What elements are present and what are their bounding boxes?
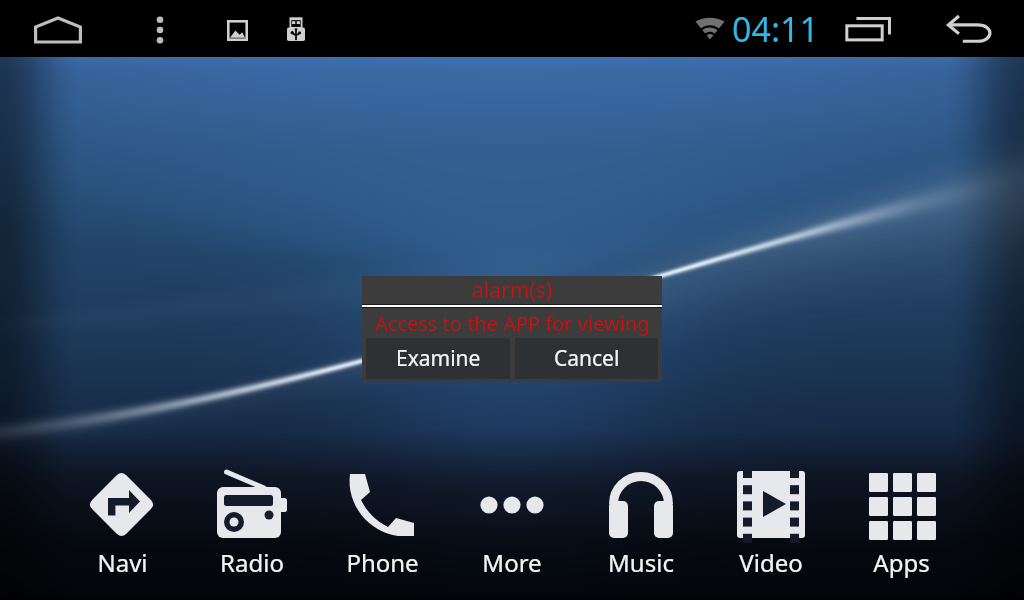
- button[interactable]: Apps: [839, 462, 963, 584]
- button[interactable]: Video: [709, 462, 833, 584]
- button[interactable]: USB connected: [287, 16, 305, 42]
- staticText: More: [482, 546, 542, 579]
- button[interactable]: Examine: [366, 338, 510, 379]
- button[interactable]: Home: [26, 15, 90, 45]
- staticText: Music: [608, 546, 674, 579]
- button[interactable]: Back: [946, 12, 994, 46]
- button[interactable]: More: [450, 462, 574, 584]
- button[interactable]: More options: [148, 15, 172, 45]
- button[interactable]: Cancel: [515, 338, 658, 379]
- staticText: Access to the APP for viewing: [375, 310, 650, 337]
- staticText: Video: [739, 546, 803, 579]
- staticText: alarm(s): [472, 276, 552, 304]
- other: Wi-Fi: [696, 18, 724, 40]
- button[interactable]: Radio: [190, 462, 314, 584]
- staticText: Radio: [220, 546, 284, 579]
- button[interactable]: Music: [579, 462, 703, 584]
- button[interactable]: Screenshot: [227, 20, 248, 41]
- staticText: Phone: [346, 546, 419, 579]
- button[interactable]: Recent apps: [845, 13, 897, 45]
- staticText: 04:11: [732, 6, 819, 52]
- button[interactable]: Phone: [320, 462, 444, 584]
- staticText: Apps: [873, 546, 930, 579]
- staticText: Examine: [396, 344, 481, 373]
- staticText: Navi: [97, 546, 148, 579]
- staticText: Cancel: [554, 344, 620, 373]
- button[interactable]: Navi: [60, 462, 184, 584]
